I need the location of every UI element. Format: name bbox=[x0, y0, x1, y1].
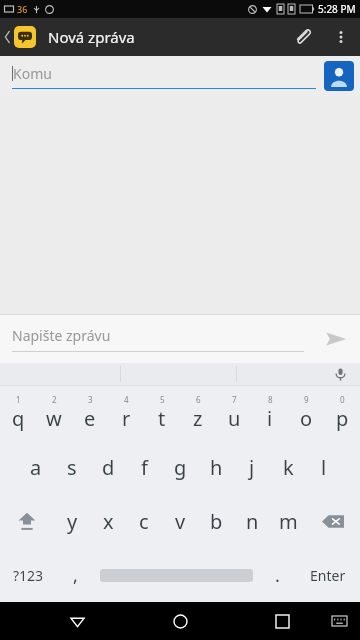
staticText: m bbox=[279, 508, 298, 535]
staticText: f bbox=[141, 454, 148, 481]
staticText: 0 bbox=[340, 394, 345, 405]
staticText: i bbox=[267, 405, 273, 432]
button[interactable]: Send bbox=[312, 315, 360, 363]
staticText: w bbox=[46, 405, 62, 432]
button[interactable]: l bbox=[306, 440, 342, 494]
button[interactable]: Voice input bbox=[320, 363, 360, 385]
staticText: k bbox=[283, 454, 294, 481]
button[interactable]: . bbox=[259, 548, 295, 602]
staticText: 4 bbox=[124, 394, 129, 405]
button[interactable]: d bbox=[90, 440, 126, 494]
button[interactable]: f bbox=[126, 440, 162, 494]
staticText: n bbox=[246, 508, 259, 535]
button[interactable]: 0 bbox=[324, 386, 360, 440]
staticText: ?123 bbox=[13, 566, 44, 585]
staticText: j bbox=[249, 454, 255, 481]
staticText: p bbox=[336, 405, 349, 432]
button[interactable]: k bbox=[270, 440, 306, 494]
button[interactable]: 3 bbox=[72, 386, 108, 440]
button[interactable]: Shift bbox=[0, 494, 54, 548]
button[interactable]: Home bbox=[160, 602, 200, 640]
staticText: Napište zprávu bbox=[12, 326, 111, 345]
button[interactable]: v bbox=[162, 494, 198, 548]
button[interactable]: Komu bbox=[0, 64, 324, 89]
staticText: 9 bbox=[304, 394, 309, 405]
staticText: Komu bbox=[13, 64, 52, 83]
staticText: l bbox=[321, 454, 327, 481]
button[interactable]: 9 bbox=[288, 386, 324, 440]
button[interactable]: y bbox=[54, 494, 90, 548]
staticText: r bbox=[122, 405, 131, 432]
staticText: 5 bbox=[160, 394, 165, 405]
button[interactable]: Back bbox=[0, 26, 38, 48]
button[interactable]: g bbox=[162, 440, 198, 494]
staticText: , bbox=[73, 563, 78, 588]
button[interactable]: 6 bbox=[180, 386, 216, 440]
staticText: g bbox=[174, 454, 187, 481]
button[interactable]: Napište zprávu bbox=[0, 326, 312, 352]
staticText: q bbox=[12, 405, 25, 432]
button[interactable]: , bbox=[57, 548, 93, 602]
button[interactable]: Attach bbox=[284, 18, 322, 56]
staticText: y bbox=[67, 508, 78, 535]
staticText: 3 bbox=[88, 394, 93, 405]
button[interactable]: x bbox=[90, 494, 126, 548]
staticText: h bbox=[210, 454, 223, 481]
button[interactable]: More options bbox=[322, 18, 360, 56]
staticText: o bbox=[300, 405, 313, 432]
button[interactable]: 8 bbox=[252, 386, 288, 440]
button[interactable]: Change keyboard bbox=[324, 606, 354, 636]
staticText: 1 bbox=[16, 394, 21, 405]
staticText: Nová zpráva bbox=[48, 27, 135, 47]
button[interactable]: a bbox=[18, 440, 54, 494]
staticText: 5:28 PM bbox=[318, 2, 356, 16]
button[interactable]: 1 bbox=[0, 386, 36, 440]
staticText: z bbox=[193, 405, 203, 432]
staticText: . bbox=[275, 563, 280, 588]
button[interactable]: 7 bbox=[216, 386, 252, 440]
button[interactable]: 5 bbox=[144, 386, 180, 440]
staticText: e bbox=[84, 405, 96, 432]
button[interactable]: 4 bbox=[108, 386, 144, 440]
button[interactable]: s bbox=[54, 440, 90, 494]
staticText: s bbox=[67, 454, 77, 481]
button[interactable]: Space bbox=[93, 548, 259, 602]
staticText: 6 bbox=[196, 394, 201, 405]
staticText: u bbox=[228, 405, 241, 432]
staticText: b bbox=[210, 508, 223, 535]
staticText: 36 bbox=[17, 3, 28, 15]
staticText: 2 bbox=[52, 394, 57, 405]
staticText: Enter bbox=[310, 566, 346, 585]
staticText: d bbox=[102, 454, 115, 481]
staticText: c bbox=[139, 508, 149, 535]
button[interactable]: 2 bbox=[36, 386, 72, 440]
button[interactable]: c bbox=[126, 494, 162, 548]
button[interactable]: Choose contact bbox=[324, 61, 354, 91]
staticText: 7 bbox=[232, 394, 237, 405]
button[interactable]: ?123 bbox=[0, 548, 57, 602]
button[interactable]: Enter bbox=[295, 548, 360, 602]
staticText: v bbox=[175, 508, 186, 535]
button[interactable]: Back bbox=[57, 602, 97, 640]
staticText: t bbox=[158, 405, 166, 432]
button[interactable]: n bbox=[234, 494, 270, 548]
button[interactable]: m bbox=[270, 494, 306, 548]
button[interactable]: Backspace bbox=[306, 494, 360, 548]
staticText: x bbox=[103, 508, 114, 535]
button[interactable]: h bbox=[198, 440, 234, 494]
button[interactable]: b bbox=[198, 494, 234, 548]
staticText: 8 bbox=[268, 394, 273, 405]
button[interactable]: j bbox=[234, 440, 270, 494]
button[interactable]: Recent apps bbox=[262, 602, 302, 640]
staticText: a bbox=[30, 454, 42, 481]
